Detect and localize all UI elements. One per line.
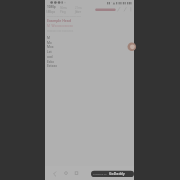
staticText: Ping <box>60 10 66 14</box>
staticText: M <box>47 35 50 39</box>
staticText: Lxt <box>47 49 52 53</box>
staticText: GoDaddy <box>109 171 125 176</box>
staticText: oxd <box>47 54 53 58</box>
staticText: Example Head <box>47 18 72 23</box>
staticText: Jitter <box>75 10 81 14</box>
staticText: Powered by <box>93 172 107 175</box>
staticText: Mxx <box>47 44 54 48</box>
button[interactable]: Powered by GoDaddy <box>91 170 134 177</box>
staticText: Mx <box>47 40 52 44</box>
staticText: 56ms <box>60 6 67 10</box>
staticText: xxxxxxx xxx xxxxxxxx <box>47 29 74 33</box>
staticText: ▮▮ · ▲ ▮ ▮▮ ▮▮ ▮▮▮ <box>107 1 133 5</box>
button[interactable]: Open chat <box>127 42 136 52</box>
staticText: 1080p <box>47 5 56 9</box>
button[interactable]: Recent apps <box>74 167 87 180</box>
staticText: 5Mbps <box>46 10 56 14</box>
button[interactable]: Home <box>61 167 74 180</box>
staticText: M Wxxxxxxxxxxx <box>47 24 74 28</box>
staticText: Exkx <box>47 59 55 63</box>
staticText: 21ms <box>75 6 82 10</box>
staticText: Extxxx <box>47 63 57 67</box>
